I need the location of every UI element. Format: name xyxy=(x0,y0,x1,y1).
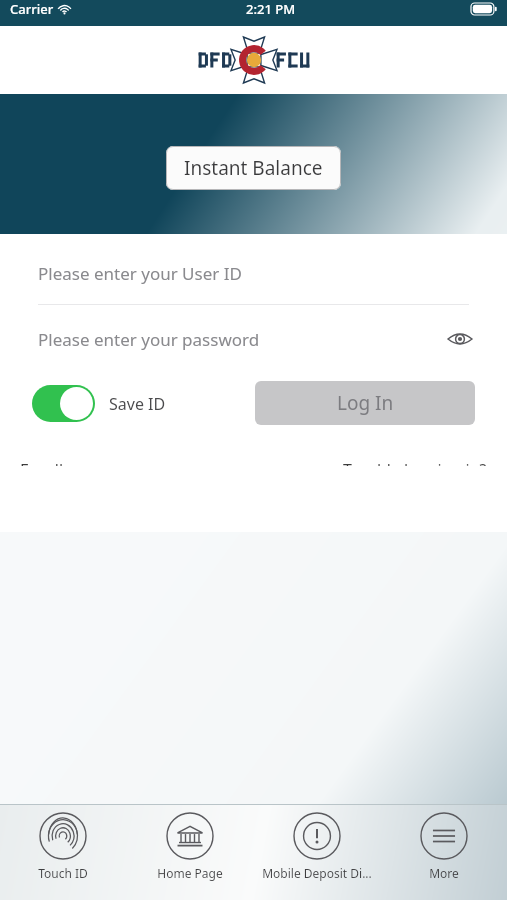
staticText: 2:21 PM xyxy=(246,0,296,18)
staticText: Log In xyxy=(337,390,394,416)
staticText: Carrier xyxy=(10,0,54,18)
staticText: Trouble logging in? xyxy=(343,459,487,466)
staticText: Home Page xyxy=(157,865,223,881)
button[interactable]: Mobile Deposit Di... xyxy=(253,812,380,881)
button[interactable]: Instant Balance xyxy=(166,146,341,190)
staticText: Mobile Deposit Di... xyxy=(262,865,372,881)
button[interactable]: Enroll now xyxy=(14,453,105,472)
staticText: Please enter your User ID xyxy=(38,262,242,285)
staticText: More xyxy=(429,865,459,881)
button[interactable]: Trouble logging in? xyxy=(337,453,493,472)
button[interactable]: Home Page xyxy=(126,812,253,881)
staticText: Touch ID xyxy=(38,865,88,881)
staticText: Instant Balance xyxy=(184,155,323,181)
button[interactable]: Please enter your password xyxy=(12,305,495,373)
button[interactable]: More xyxy=(380,812,507,881)
button[interactable]: Touch ID xyxy=(0,812,126,881)
staticText: Save ID xyxy=(109,393,166,415)
staticText: Enroll now xyxy=(20,459,99,466)
button[interactable]: Save ID xyxy=(32,385,166,422)
staticText: Please enter your password xyxy=(38,328,260,351)
button[interactable]: Please enter your User ID xyxy=(12,242,495,304)
button[interactable]: Show password xyxy=(445,324,475,354)
button[interactable]: Log In xyxy=(255,381,475,425)
